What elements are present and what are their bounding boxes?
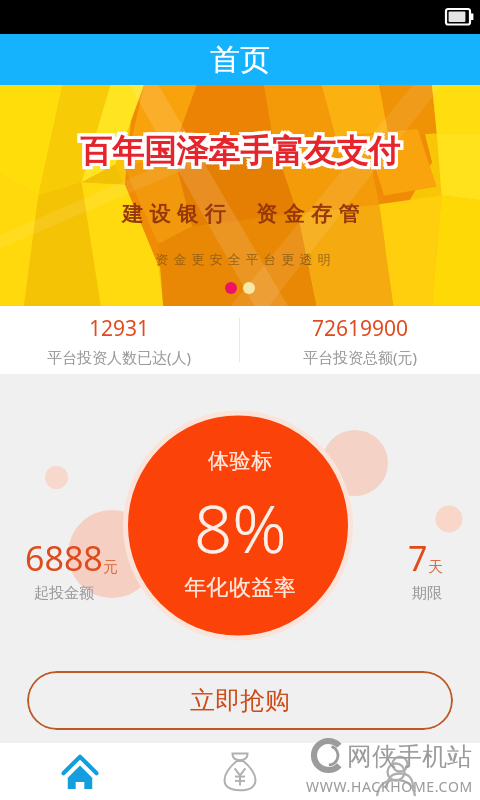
staticText: 6888: [25, 535, 103, 581]
staticText: 起投金额: [34, 584, 94, 603]
staticText: 百年国泽牵手富友支付: [80, 134, 400, 174]
staticText: 百年国泽牵手富友支付: [82, 133, 402, 173]
button[interactable]: Profile: [320, 743, 480, 800]
staticText: 百年国泽牵手富友支付: [78, 129, 398, 169]
staticText: 平台投资总额(元): [303, 347, 418, 367]
staticText: 年化收益率: [184, 574, 296, 602]
staticText: 百年国泽牵手富友支付: [80, 133, 400, 173]
staticText: 百年国泽牵手富友支付: [82, 129, 402, 169]
staticText: 7: [408, 535, 428, 581]
button[interactable]: 立即抢购: [27, 671, 453, 730]
staticText: 百年国泽牵手富友支付: [80, 129, 400, 169]
staticText: 建设银行 资金存管: [122, 199, 366, 228]
staticText: 百年国泽牵手富友支付: [80, 128, 400, 168]
staticText: 立即抢购: [190, 685, 290, 716]
staticText: 百年国泽牵手富友支付: [83, 128, 403, 168]
staticText: 百年国泽牵手富友支付: [77, 134, 397, 174]
staticText: 平台投资人数已达(人): [47, 347, 192, 367]
staticText: 网侠手机站: [347, 741, 472, 772]
button[interactable]: Home: [0, 743, 160, 800]
staticText: 12931: [89, 314, 150, 343]
staticText: 资金更安全平台更透明: [153, 251, 333, 267]
staticText: 百年国泽牵手富友支付: [83, 134, 403, 174]
staticText: 百年国泽牵手富友支付: [77, 128, 397, 168]
staticText: 百年国泽牵手富友支付: [80, 131, 400, 171]
staticText: 8%: [194, 481, 287, 572]
staticText: 百年国泽牵手富友支付: [82, 131, 402, 171]
staticText: 百年国泽牵手富友支付: [78, 133, 398, 173]
staticText: 体验标: [208, 448, 273, 474]
staticText: 首页: [210, 41, 270, 79]
staticText: WWW.HACKHOME.COM: [306, 777, 473, 796]
staticText: 百年国泽牵手富友支付: [78, 131, 398, 171]
staticText: 期限: [412, 584, 442, 603]
button[interactable]: Wallet: [160, 743, 320, 800]
staticText: 百年国泽牵手富友支付: [77, 131, 397, 171]
staticText: 百年国泽牵手富友支付: [83, 131, 403, 171]
staticText: 天: [428, 558, 443, 577]
staticText: 元: [103, 558, 118, 577]
staticText: 72619900: [312, 314, 409, 343]
